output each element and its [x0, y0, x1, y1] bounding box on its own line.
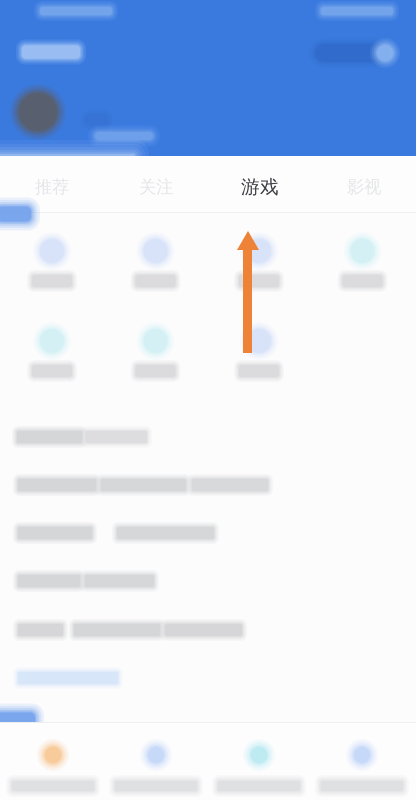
- button[interactable]: Category: [207, 322, 311, 426]
- button[interactable]: Tab: [104, 735, 208, 800]
- button[interactable]: Category: [0, 232, 104, 336]
- staticText: 影视: [347, 176, 381, 198]
- staticText: 游戏: [241, 175, 279, 198]
- button[interactable]: Profile: [10, 84, 66, 140]
- button[interactable]: Tab: [310, 735, 414, 800]
- staticText: 关注: [139, 176, 173, 198]
- button[interactable]: Category: [103, 322, 207, 426]
- button[interactable]: 游戏: [208, 159, 312, 215]
- button[interactable]: 推荐: [0, 159, 104, 215]
- button[interactable]: Tab: [1, 735, 105, 800]
- button[interactable]: 关注: [104, 159, 208, 215]
- button[interactable]: Category: [103, 232, 207, 336]
- staticText: 推荐: [35, 176, 69, 198]
- button[interactable]: Category: [207, 232, 311, 336]
- button[interactable]: Tab: [207, 735, 311, 800]
- button[interactable]: Category: [310, 232, 414, 336]
- button[interactable]: 影视: [312, 159, 416, 215]
- button[interactable]: Category: [0, 322, 104, 426]
- button[interactable]: Action: [370, 38, 400, 68]
